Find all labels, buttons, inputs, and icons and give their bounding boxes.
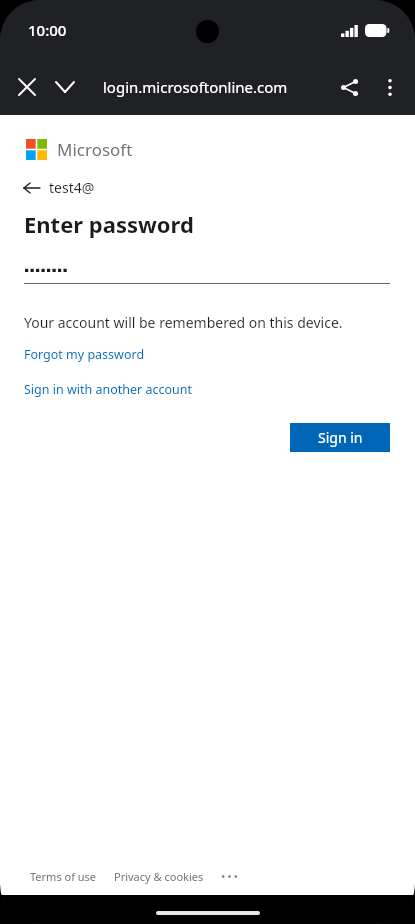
button[interactable]: More options [368, 65, 412, 109]
staticText: Microsoft [57, 138, 133, 161]
staticText: Privacy & cookies [114, 869, 204, 884]
button[interactable]: Forgot my password [24, 346, 145, 363]
staticText: Sign in [318, 428, 363, 447]
button[interactable]: Sign in [290, 423, 390, 452]
staticText: 10:00 [28, 20, 67, 40]
button[interactable]: Sign in with another account [24, 381, 193, 398]
staticText: test4@ [49, 178, 95, 197]
button[interactable]: test4@ [24, 178, 95, 197]
button[interactable]: Terms of use [30, 869, 97, 884]
staticText: Sign in with another account [24, 381, 193, 398]
button[interactable]: Expand toolbar [43, 65, 87, 109]
staticText: Your account will be remembered on this … [24, 313, 343, 332]
button[interactable] [24, 257, 390, 284]
staticText: Forgot my password [24, 346, 145, 363]
staticText: login.microsoftonline.com [103, 77, 288, 97]
button[interactable]: Close [5, 65, 49, 109]
staticText: Enter password [24, 209, 194, 239]
button[interactable]: More footer links [218, 868, 240, 884]
staticText: Terms of use [30, 869, 97, 884]
button[interactable]: Share [327, 65, 371, 109]
button[interactable]: Privacy & cookies [114, 869, 204, 884]
